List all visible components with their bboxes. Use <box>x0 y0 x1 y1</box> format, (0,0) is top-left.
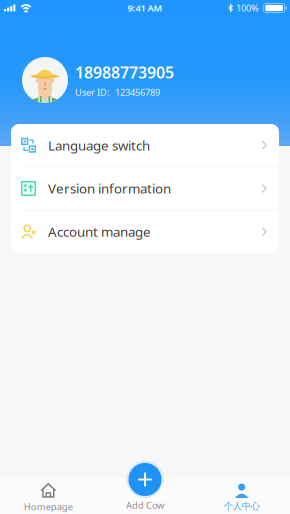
staticText: Language switch <box>48 136 150 154</box>
button[interactable]: 个人中心 <box>193 477 290 514</box>
button[interactable]: Homepage <box>0 477 97 514</box>
button[interactable]: Version information <box>11 167 279 210</box>
staticText: Add Cow <box>126 499 164 511</box>
staticText: 9:41 AM <box>127 2 162 14</box>
staticText: 100% <box>236 2 259 14</box>
staticText: 个人中心 <box>224 500 260 512</box>
button[interactable]: Language switch <box>11 124 279 167</box>
staticText: 123456789 <box>115 86 160 98</box>
staticText: User ID: <box>75 86 110 98</box>
button[interactable]: Account manage <box>11 210 279 253</box>
staticText: 18988773905 <box>75 62 174 83</box>
staticText: Homepage <box>24 500 73 513</box>
button[interactable]: Add Cow <box>97 477 193 514</box>
staticText: Version information <box>48 180 171 197</box>
staticText: Account manage <box>48 223 151 240</box>
